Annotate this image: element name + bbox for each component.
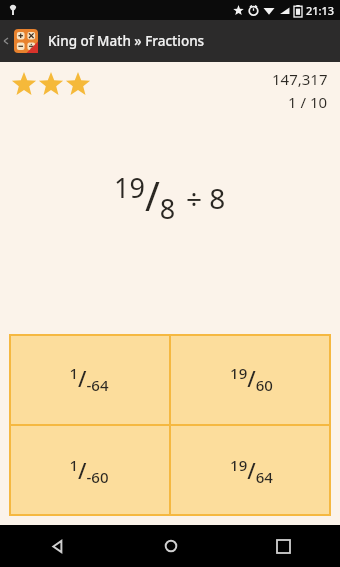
staticText: 1 / 10: [288, 92, 328, 112]
button[interactable]: 19/64: [171, 426, 331, 516]
button[interactable]: Recents: [227, 525, 340, 567]
button[interactable]: 19/60: [171, 334, 331, 424]
button[interactable]: Back: [0, 20, 12, 62]
button[interactable]: 1/-60: [9, 426, 169, 516]
staticText: ÷ 8: [186, 179, 226, 217]
button[interactable]: [12, 20, 40, 62]
staticText: 1/-64: [69, 363, 109, 396]
staticText: King of Math » Fractions: [48, 32, 205, 50]
staticText: 1/-60: [69, 455, 109, 488]
button[interactable]: Home: [114, 525, 227, 567]
staticText: 147,317: [272, 69, 328, 89]
staticText: 19/64: [230, 455, 273, 488]
staticText: 19/8: [114, 168, 176, 227]
button[interactable]: 1/-64: [9, 334, 169, 424]
staticText: 21:13: [306, 3, 335, 18]
button[interactable]: Back: [0, 525, 114, 567]
staticText: 19/60: [230, 363, 273, 396]
